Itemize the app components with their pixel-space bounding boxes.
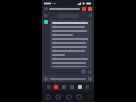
button[interactable]: Conversation title [49, 8, 80, 10]
button[interactable]: GIFs [65, 93, 72, 100]
button[interactable]: Scroll to bottom [81, 69, 86, 74]
button[interactable]: Call [82, 7, 86, 11]
button[interactable]: Sticker pack 5 [77, 84, 83, 90]
button[interactable]: Emoji [75, 93, 82, 100]
button[interactable]: Sticker pack 2 [53, 84, 59, 90]
button[interactable]: Attach [88, 70, 92, 74]
button[interactable]: Video call [88, 7, 92, 11]
button[interactable]: Message input [50, 78, 86, 80]
button[interactable]: More [85, 93, 92, 100]
button[interactable]: Sticker pack 3 [61, 84, 67, 90]
button[interactable]: Contact avatar [44, 7, 48, 11]
button[interactable]: Sticker pack 4 [69, 84, 75, 90]
button[interactable] [50, 20, 92, 69]
button[interactable]: Emoji [44, 77, 48, 81]
button[interactable]: Sticker pack 1 [46, 84, 52, 90]
button[interactable]: Recent [44, 93, 51, 100]
button[interactable]: Stickers [54, 93, 61, 100]
button[interactable]: Sticker pack 6 [84, 84, 90, 90]
button[interactable]: Sender avatar [44, 20, 48, 24]
button[interactable]: Send [88, 77, 92, 81]
